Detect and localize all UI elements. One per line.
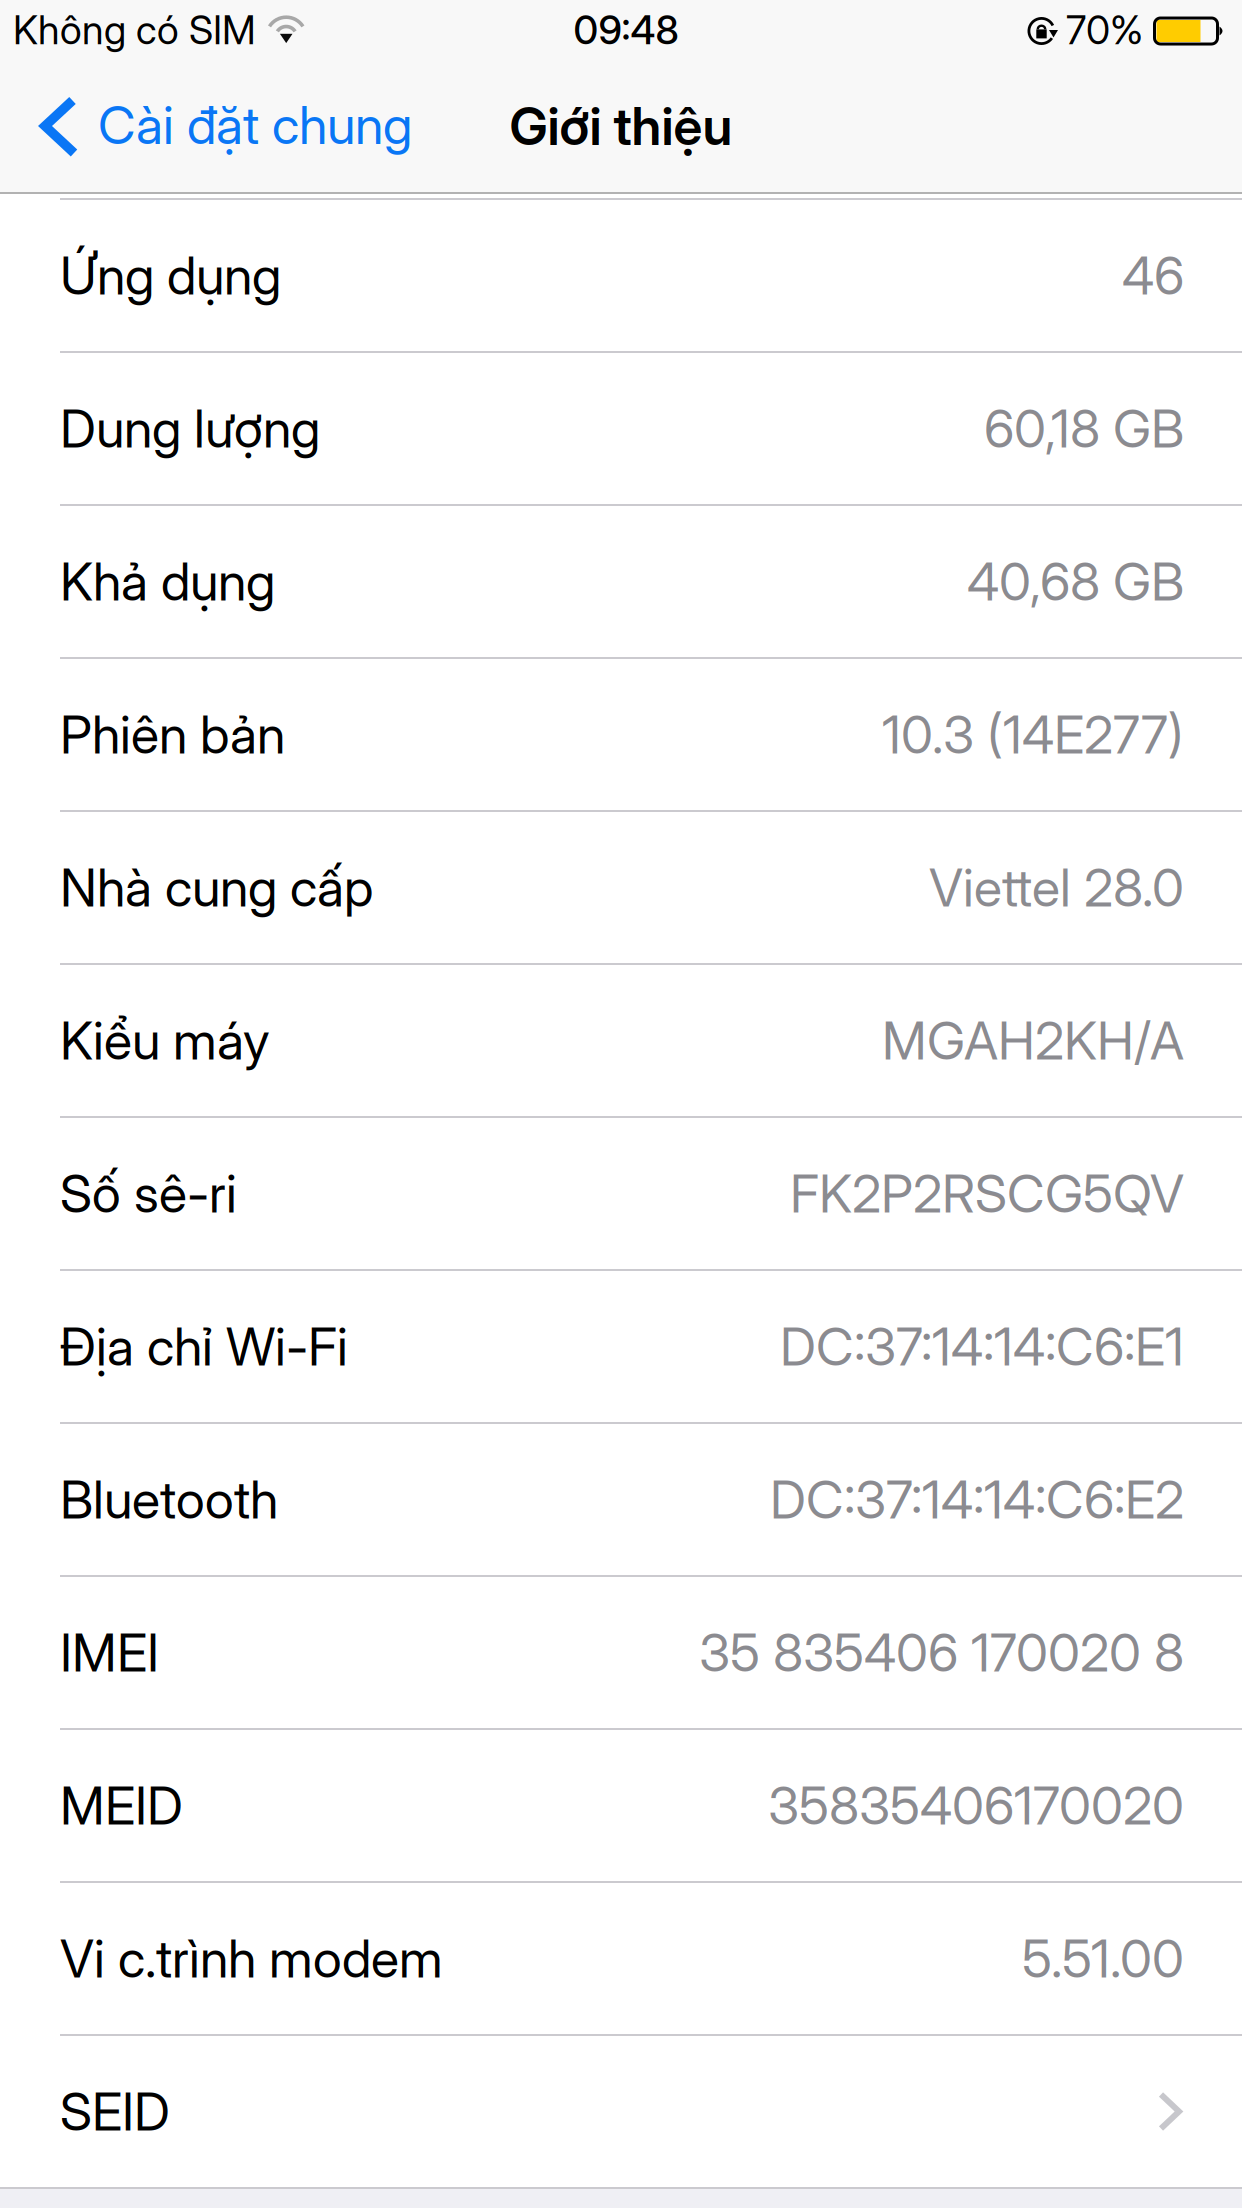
staticText: 46 bbox=[1122, 244, 1184, 307]
staticText: Ứng dụng bbox=[60, 244, 281, 307]
staticText: 35835406170020 bbox=[768, 1774, 1184, 1837]
button[interactable]: MEID bbox=[0, 1730, 1242, 1881]
staticText: 5.51.00 bbox=[1022, 1927, 1184, 1990]
staticText: 35 835406 170020 8 bbox=[699, 1621, 1184, 1684]
button[interactable]: Số sê-ri bbox=[0, 1118, 1242, 1269]
staticText: MGAH2KH/A bbox=[882, 1009, 1184, 1072]
staticText: Nhà cung cấp bbox=[60, 856, 373, 919]
button[interactable]: Kiểu máy bbox=[0, 965, 1242, 1116]
staticText: 70% bbox=[1066, 6, 1143, 54]
staticText: Bluetooth bbox=[60, 1468, 278, 1531]
staticText: 10.3 (14E277) bbox=[882, 703, 1184, 766]
button[interactable]: SEID bbox=[0, 2036, 1242, 2187]
button[interactable]: Nhà cung cấp bbox=[0, 812, 1242, 963]
staticText: Kiểu máy bbox=[60, 1009, 270, 1072]
staticText: FK2P2RSCG5QV bbox=[790, 1162, 1184, 1225]
staticText: 09:48 bbox=[573, 6, 678, 54]
button[interactable]: Vi c.trình modem bbox=[0, 1883, 1242, 2034]
staticText: DC:37:14:14:C6:E2 bbox=[770, 1468, 1184, 1531]
staticText: Giới thiệu bbox=[509, 94, 732, 157]
staticText: 60,18 GB bbox=[984, 397, 1184, 460]
staticText: SEID bbox=[60, 2080, 170, 2143]
button[interactable]: Ứng dụng bbox=[0, 200, 1242, 351]
staticText: Phiên bản bbox=[60, 703, 285, 766]
staticText: Địa chỉ Wi-Fi bbox=[60, 1315, 348, 1378]
staticText: IMEI bbox=[60, 1621, 159, 1684]
staticText: Cài đặt chung bbox=[98, 93, 412, 156]
staticText: MEID bbox=[60, 1774, 183, 1837]
button[interactable]: Địa chỉ Wi-Fi bbox=[0, 1271, 1242, 1422]
button[interactable]: Dung lượng bbox=[0, 353, 1242, 504]
staticText: Vi c.trình modem bbox=[60, 1927, 443, 1990]
staticText: Số sê-ri bbox=[60, 1162, 237, 1225]
button[interactable]: Quay lại Cài đặt chung bbox=[0, 60, 442, 192]
staticText: Không có SIM bbox=[13, 6, 256, 54]
button[interactable]: Khả dụng bbox=[0, 506, 1242, 657]
staticText: Dung lượng bbox=[60, 397, 320, 460]
button[interactable]: Phiên bản bbox=[0, 659, 1242, 810]
staticText: Viettel 28.0 bbox=[929, 856, 1184, 919]
button[interactable]: IMEI bbox=[0, 1577, 1242, 1728]
staticText: Khả dụng bbox=[60, 550, 275, 613]
button[interactable]: Bluetooth bbox=[0, 1424, 1242, 1575]
staticText: 40,68 GB bbox=[967, 550, 1184, 613]
staticText: DC:37:14:14:C6:E1 bbox=[780, 1315, 1184, 1378]
